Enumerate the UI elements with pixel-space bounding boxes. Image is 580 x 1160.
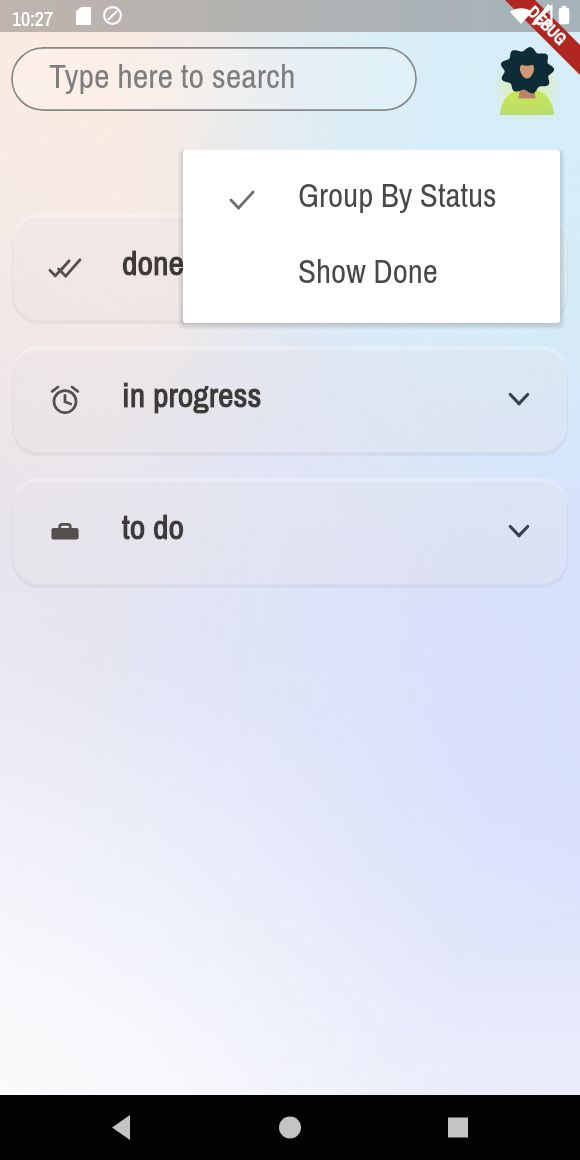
button[interactable]: Show Done — [183, 236, 560, 323]
button[interactable]: Profile — [494, 47, 560, 113]
staticText: to do — [122, 504, 185, 550]
staticText: Type here to search — [49, 53, 296, 99]
button[interactable]: to do — [13, 478, 567, 584]
staticText: 10:27 — [12, 5, 54, 32]
staticText: Group By Status — [298, 173, 497, 217]
button[interactable]: in progress — [13, 346, 567, 452]
button[interactable]: Expand — [504, 516, 534, 546]
staticText: Show Done — [298, 249, 438, 293]
button[interactable]: Group By Status — [183, 150, 560, 236]
staticText: DEBUG — [523, 1, 572, 49]
button[interactable]: Expand — [504, 384, 534, 414]
button[interactable]: done — [13, 214, 567, 320]
staticText: done — [122, 240, 185, 286]
staticText: in progress — [122, 372, 262, 418]
button[interactable]: Type here to search — [11, 47, 417, 111]
